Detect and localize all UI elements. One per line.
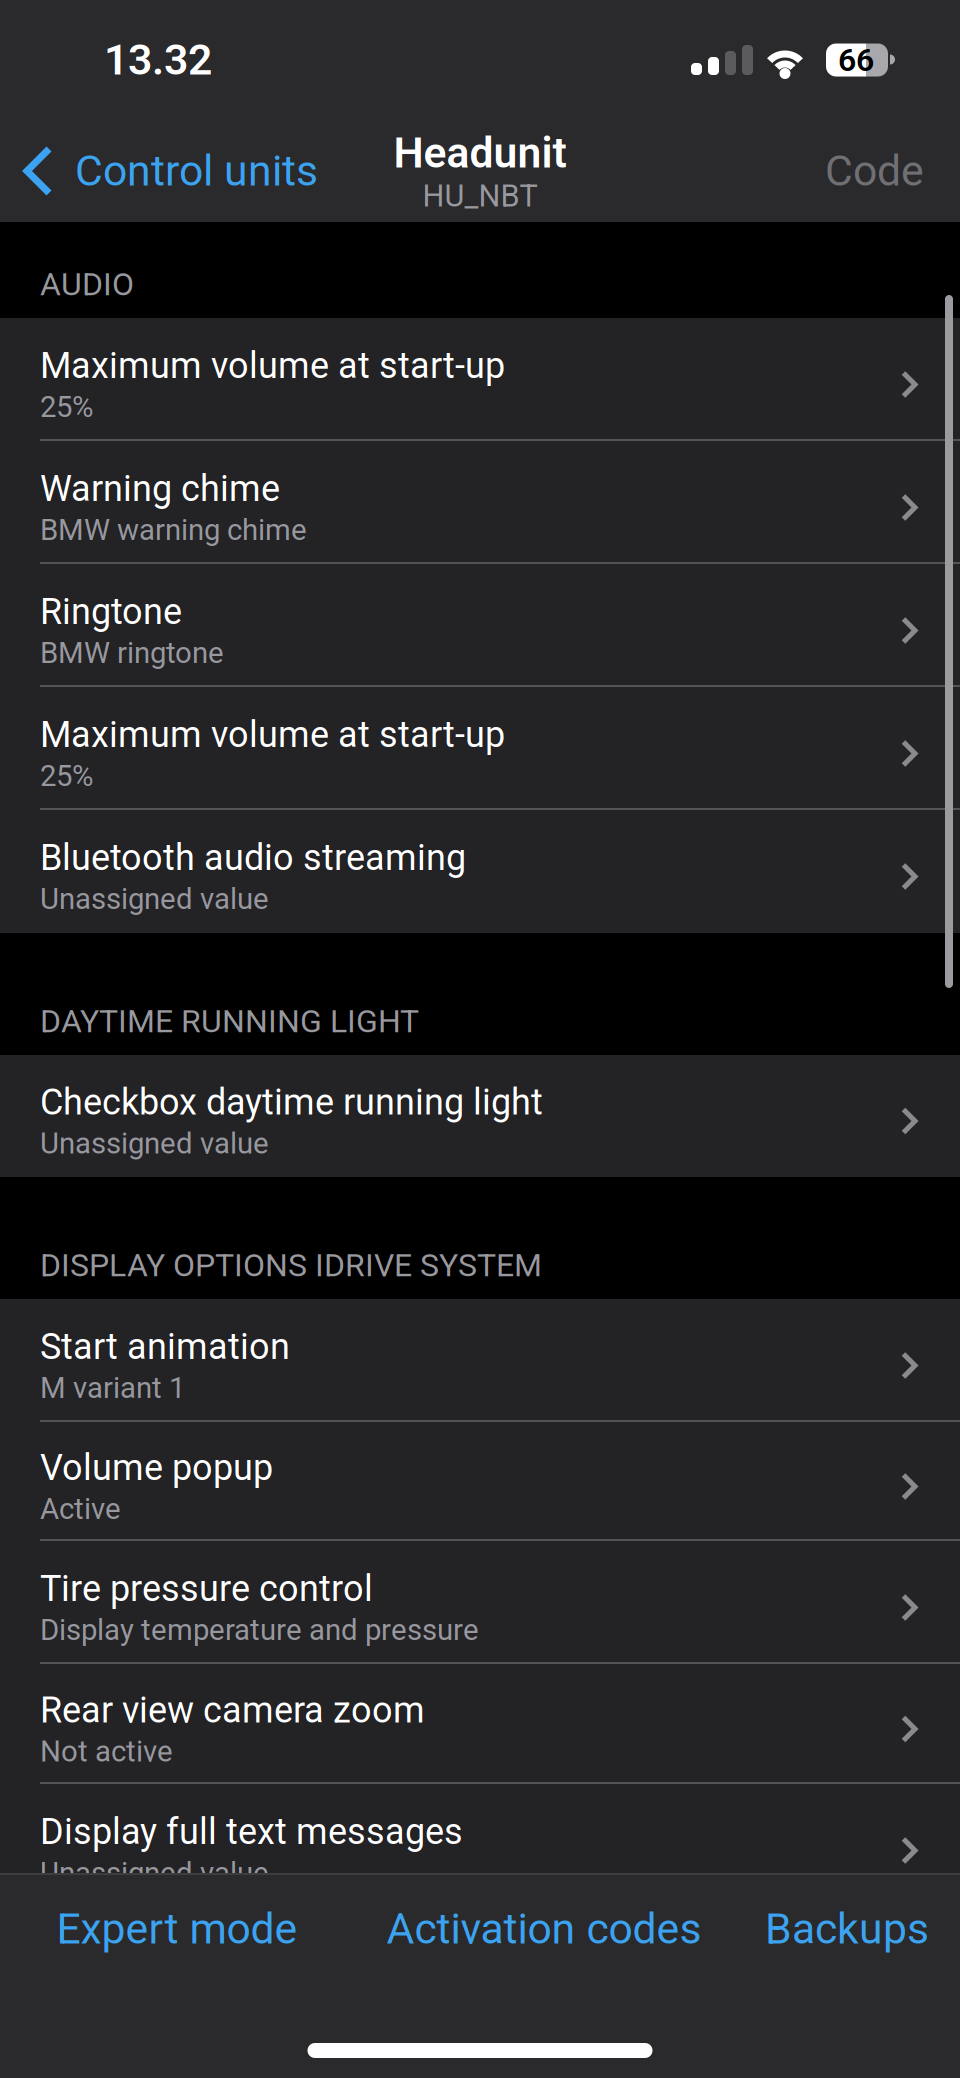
staticText: HU_NBT bbox=[422, 178, 537, 214]
staticText: Ringtone bbox=[40, 591, 182, 633]
button[interactable]: Warning chime bbox=[0, 441, 960, 564]
staticText: Display temperature and pressure bbox=[40, 1613, 479, 1647]
button[interactable]: Expert mode bbox=[0, 1888, 354, 1970]
staticText: Control units bbox=[75, 146, 318, 196]
staticText: 25% bbox=[40, 759, 93, 793]
staticText: Bluetooth audio streaming bbox=[40, 837, 466, 879]
staticText: DAYTIME RUNNING LIGHT bbox=[40, 1002, 419, 1040]
button[interactable]: Tire pressure control bbox=[0, 1541, 960, 1664]
staticText: Code bbox=[825, 146, 924, 196]
staticText: Activation codes bbox=[386, 1904, 701, 1954]
staticText: Maximum volume at start-up bbox=[40, 714, 505, 756]
staticText: Checkbox daytime running light bbox=[40, 1081, 543, 1123]
staticText: 66 bbox=[838, 41, 874, 79]
staticText: AUDIO bbox=[40, 265, 134, 303]
staticText: Headunit bbox=[393, 128, 566, 178]
staticText: Display full text messages bbox=[40, 1811, 463, 1853]
button[interactable]: Backups bbox=[734, 1888, 960, 1970]
staticText: Volume popup bbox=[40, 1447, 273, 1489]
staticText: 25% bbox=[40, 390, 93, 424]
staticText: M variant 1 bbox=[40, 1371, 185, 1405]
staticText: Not active bbox=[40, 1734, 173, 1769]
button[interactable]: Display full text messages bbox=[0, 1784, 960, 1907]
staticText: Warning chime bbox=[40, 468, 280, 510]
staticText: Backups bbox=[765, 1904, 929, 1954]
button[interactable]: Bluetooth audio streaming bbox=[0, 810, 960, 933]
staticText: Unassigned value bbox=[40, 1856, 269, 1890]
button[interactable]: Volume popup bbox=[0, 1422, 960, 1541]
button[interactable]: Maximum volume at start-up bbox=[0, 687, 960, 810]
staticText: 13.32 bbox=[104, 35, 212, 85]
staticText: Unassigned value bbox=[40, 1126, 269, 1161]
button[interactable]: Rear view camera zoom bbox=[0, 1664, 960, 1784]
staticText: Expert mode bbox=[56, 1904, 297, 1954]
staticText: Active bbox=[40, 1492, 121, 1526]
button[interactable]: Ringtone bbox=[0, 564, 960, 687]
staticText: Rear view camera zoom bbox=[40, 1689, 425, 1731]
staticText: Maximum volume at start-up bbox=[40, 345, 505, 387]
button[interactable]: Maximum volume at start-up bbox=[0, 318, 960, 441]
button[interactable]: Start animation bbox=[0, 1299, 960, 1422]
button[interactable]: Code bbox=[825, 126, 960, 216]
button[interactable]: Control units bbox=[0, 126, 318, 216]
button[interactable]: Checkbox daytime running light bbox=[0, 1055, 960, 1177]
staticText: Tire pressure control bbox=[40, 1568, 373, 1610]
button[interactable]: Activation codes bbox=[354, 1888, 734, 1970]
staticText: DISPLAY OPTIONS IDRIVE SYSTEM bbox=[40, 1246, 542, 1284]
staticText: BMW ringtone bbox=[40, 636, 224, 670]
staticText: Unassigned value bbox=[40, 882, 269, 916]
staticText: Start animation bbox=[40, 1326, 290, 1368]
staticText: BMW warning chime bbox=[40, 513, 307, 547]
